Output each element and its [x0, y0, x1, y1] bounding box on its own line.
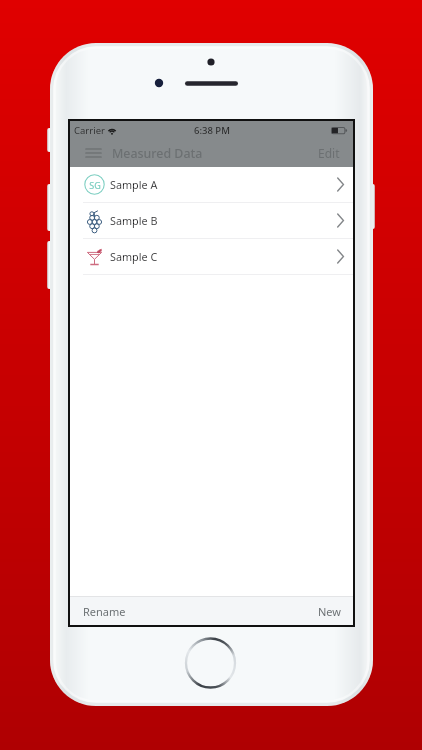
staticText: Sample A [110, 177, 158, 192]
staticText: New [318, 604, 341, 619]
button[interactable]: Rename [83, 604, 126, 619]
button[interactable]: New [318, 604, 341, 619]
staticText: Edit [318, 145, 340, 161]
button[interactable]: Sample B [70, 203, 353, 238]
button[interactable]: Edit [307, 139, 353, 167]
staticText: Sample C [110, 249, 158, 264]
staticText: SG [89, 179, 101, 191]
staticText: Rename [83, 604, 126, 619]
button[interactable]: Menu [70, 139, 116, 167]
button[interactable]: SG [70, 167, 353, 202]
staticText: 6:38 PM [194, 124, 230, 137]
staticText: Sample B [110, 213, 158, 228]
staticText: Measured Data [112, 145, 203, 162]
staticText: Carrier [74, 124, 105, 137]
button[interactable]: Sample C [70, 239, 353, 274]
